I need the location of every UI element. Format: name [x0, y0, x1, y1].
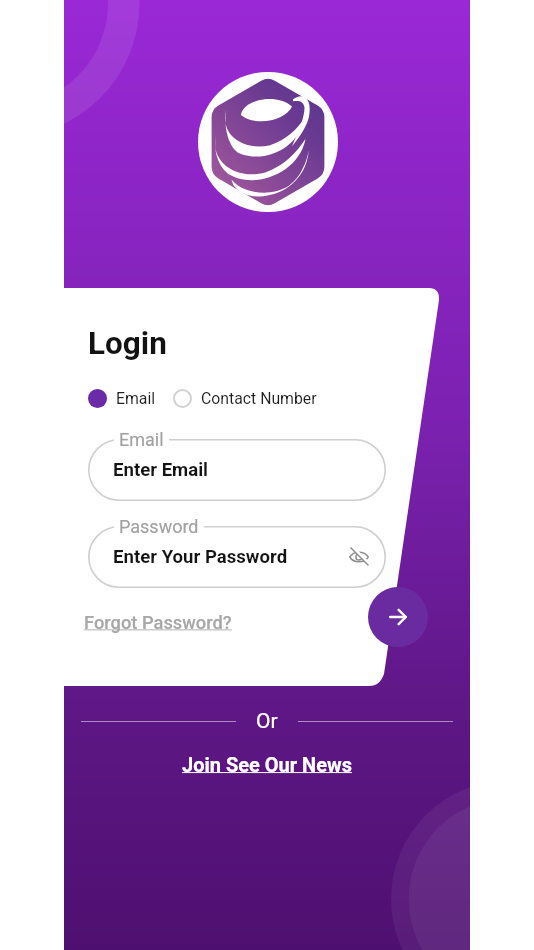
staticText: Email	[116, 389, 156, 408]
staticText: Login	[88, 325, 167, 362]
staticText: Email	[119, 429, 164, 450]
staticText: Or	[256, 709, 278, 734]
staticText: Forgot Password?	[84, 612, 232, 633]
button[interactable]: Show password	[345, 543, 373, 571]
button[interactable]: Forgot Password?	[84, 612, 232, 633]
staticText: Contact Number	[201, 389, 317, 408]
button[interactable]: Join See Our News	[182, 753, 352, 776]
staticText: Enter Email	[113, 459, 209, 481]
button[interactable]: Email	[88, 389, 156, 408]
button[interactable]: Enter Email	[88, 439, 386, 501]
button[interactable]: Enter Your Password	[88, 526, 386, 588]
staticText: Join See Our News	[182, 753, 352, 776]
staticText: Password	[119, 516, 199, 537]
staticText: Enter Your Password	[113, 546, 288, 568]
button[interactable]: Continue	[368, 587, 428, 647]
button[interactable]: Contact Number	[173, 389, 317, 408]
